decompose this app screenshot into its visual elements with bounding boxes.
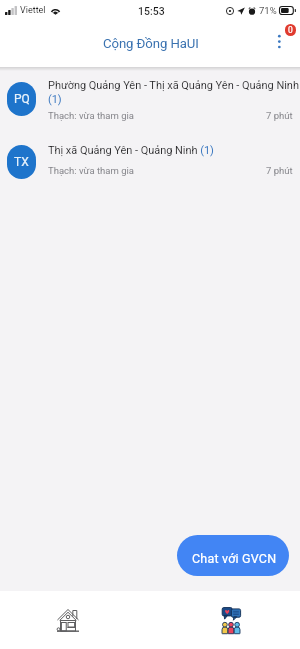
staticText: 7 phút — [266, 110, 293, 121]
staticText: 71% — [259, 5, 277, 16]
button[interactable]: Chat với GVCN — [177, 535, 289, 576]
staticText: Cộng Đồng HaUI — [103, 36, 199, 51]
staticText: TX — [14, 155, 29, 169]
button[interactable]: Community — [209, 591, 253, 649]
staticText: Thạch: vừa tham gia — [48, 165, 134, 176]
staticText: Thị xã Quảng Yên - Quảng Ninh (1) — [48, 144, 300, 157]
button[interactable]: More options — [269, 30, 291, 58]
staticText: Thạch: vừa tham gia — [48, 110, 134, 121]
staticText: Viettel — [20, 5, 46, 16]
staticText: Phường Quảng Yên - Thị xã Quảng Yên - Qu… — [48, 79, 300, 106]
button[interactable]: PQ — [0, 74, 300, 126]
staticText: 7 phút — [266, 165, 293, 176]
button[interactable]: Home — [46, 591, 90, 649]
staticText: Chat với GVCN — [192, 551, 277, 566]
staticText: 15:53 — [138, 5, 165, 17]
button[interactable]: TX — [0, 139, 300, 184]
staticText: 0 — [288, 25, 293, 35]
staticText: PQ — [14, 92, 30, 106]
